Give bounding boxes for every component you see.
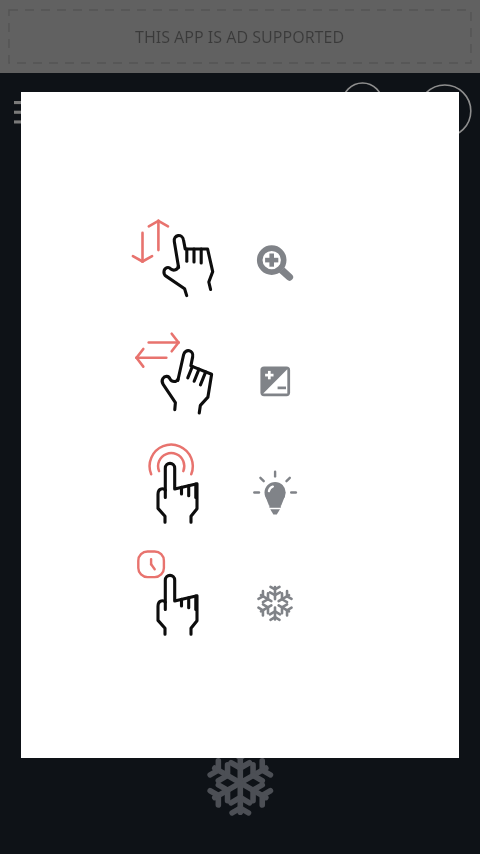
button[interactable]: THIS APP IS AD SUPPORTED	[0, 0, 480, 73]
button[interactable]: Swipe horizontally to change exposure	[21, 326, 459, 438]
button[interactable]: Open menu	[2, 96, 36, 130]
button[interactable]: Swipe vertically to zoom	[21, 206, 459, 318]
button[interactable]: Tap to toggle the flash light	[21, 440, 459, 552]
staticText: THIS APP IS AD SUPPORTED	[135, 26, 345, 48]
button[interactable]: Long press to freeze the preview	[21, 552, 459, 664]
